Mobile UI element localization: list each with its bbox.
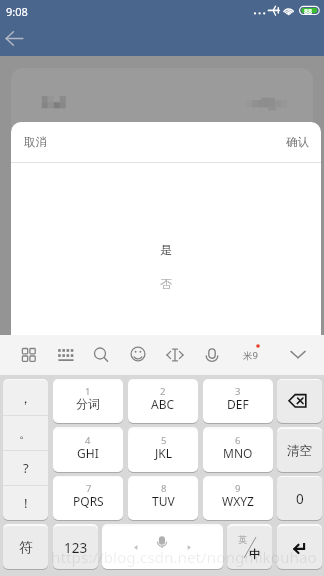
button[interactable]: ! xyxy=(3,485,48,520)
button[interactable]: ? xyxy=(3,450,48,485)
staticText: ABC xyxy=(151,396,175,412)
button[interactable]: 取消 xyxy=(17,126,54,158)
button[interactable]: 1 xyxy=(53,380,123,423)
staticText: ， xyxy=(19,390,32,406)
button[interactable]: Space xyxy=(102,526,223,569)
staticText: 符 xyxy=(19,539,33,556)
staticText: 8 xyxy=(161,482,167,495)
button[interactable]: 是 xyxy=(11,237,321,263)
button[interactable]: 6 xyxy=(203,429,273,472)
staticText: 9:08 xyxy=(6,4,28,19)
button[interactable]: Keyboard layouts xyxy=(15,341,43,369)
button[interactable]: 123 xyxy=(53,526,98,569)
button[interactable]: Back xyxy=(1,25,28,52)
staticText: TUV xyxy=(152,493,175,509)
staticText: 9 xyxy=(235,482,241,495)
staticText: MNO xyxy=(223,445,253,461)
staticText: 1 xyxy=(85,385,91,398)
staticText: 4 xyxy=(85,434,91,447)
staticText: 中 xyxy=(249,547,260,561)
button[interactable]: 5 xyxy=(128,429,198,472)
button[interactable]: 9 xyxy=(203,477,273,520)
button[interactable]: Enter xyxy=(277,526,322,569)
button[interactable]: Emoji xyxy=(124,341,152,369)
button[interactable]: 。 xyxy=(3,415,48,450)
staticText: 6 xyxy=(235,434,241,447)
button[interactable]: Delete xyxy=(277,380,322,423)
staticText: WXYZ xyxy=(222,493,254,509)
staticText: 取消 xyxy=(24,135,47,149)
button[interactable]: 0 xyxy=(277,477,322,520)
button[interactable]: 4 xyxy=(53,429,123,472)
staticText: ! xyxy=(24,494,28,512)
button[interactable]: 符 xyxy=(3,526,48,569)
staticText: 英 xyxy=(238,534,247,545)
button[interactable]: 7 xyxy=(53,477,123,520)
staticText: 米9 xyxy=(243,349,258,362)
button[interactable]: 米9 xyxy=(236,341,264,369)
button[interactable]: 8 xyxy=(128,477,198,520)
staticText: https://blog.csdn.net/nongmikouhao xyxy=(51,547,317,568)
staticText: PQRS xyxy=(73,493,104,509)
staticText: 123 xyxy=(64,539,88,557)
staticText: GHI xyxy=(77,445,99,461)
staticText: 确认 xyxy=(286,135,309,149)
staticText: DEF xyxy=(227,396,249,412)
staticText: JKL xyxy=(155,445,172,461)
button[interactable]: 清空 xyxy=(277,429,322,472)
button[interactable]: 否 xyxy=(11,271,321,297)
button[interactable]: Hide keyboard xyxy=(284,341,312,369)
button[interactable]: 3 xyxy=(203,380,273,423)
button[interactable]: 2 xyxy=(128,380,198,423)
staticText: 清空 xyxy=(287,443,312,459)
staticText: 3 xyxy=(235,385,241,398)
staticText: 分词 xyxy=(76,396,100,411)
staticText: 2 xyxy=(160,385,166,398)
button[interactable]: Switch English Chinese xyxy=(227,526,272,569)
staticText: 7 xyxy=(86,482,92,495)
staticText: 5 xyxy=(161,434,167,447)
button[interactable]: ， xyxy=(3,380,48,415)
button[interactable]: Voice input xyxy=(198,341,226,369)
button[interactable]: Search xyxy=(86,341,114,369)
button[interactable]: Keyboard xyxy=(52,341,80,369)
staticText: 是 xyxy=(160,243,172,258)
staticText: 否 xyxy=(160,277,172,292)
staticText: ? xyxy=(23,459,29,477)
button[interactable]: 确认 xyxy=(279,126,316,158)
staticText: 88 xyxy=(304,6,313,16)
staticText: 。 xyxy=(19,425,32,441)
button[interactable]: Move cursor xyxy=(161,341,189,369)
staticText: 0 xyxy=(296,490,304,508)
